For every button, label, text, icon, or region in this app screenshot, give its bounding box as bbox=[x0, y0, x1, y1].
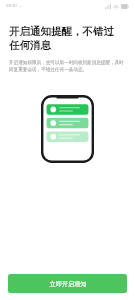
staticText: 立即开启通知 bbox=[49, 280, 87, 288]
staticText: 08:30 bbox=[6, 3, 17, 9]
button[interactable]: 立即开启通知 bbox=[8, 274, 127, 293]
staticText: 开启通知权限后，您可以第一时间收到新消息提醒，及时回复重要会话，不错过任何一条动… bbox=[9, 60, 126, 73]
staticText: 开启通知提醒，不错过任何消息 bbox=[9, 25, 122, 53]
other: Notification illustration bbox=[41, 95, 94, 163]
